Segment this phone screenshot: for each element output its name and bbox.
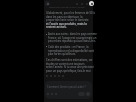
- staticText: et l'accès aux produits, mais la plupart: [46, 22, 95, 26]
- staticText: études se varient une toujours exactemen…: [46, 62, 95, 66]
- button[interactable]: Action: [57, 74, 61, 78]
- button[interactable]: Comment Gemini peut-il aider ?: [45, 81, 92, 99]
- button[interactable]: Compte: [89, 1, 94, 6]
- button[interactable]: Action: [61, 74, 65, 78]
- button[interactable]: Action: [49, 74, 53, 78]
- button[interactable]: Option: [74, 1, 79, 6]
- staticText: Ces chiffres sont des estimations, car l…: [46, 58, 95, 62]
- button[interactable]: Action: [53, 74, 57, 78]
- staticText: plus fortes qu'ailleurs.: [48, 52, 76, 56]
- staticText: proportion varie selon le contexte cultu…: [46, 18, 95, 22]
- button[interactable]: Gemini: [45, 1, 50, 6]
- staticText: restent actives.: [46, 25, 67, 29]
- staticText: Comment Gemini peut-il aider ?: [47, 85, 86, 89]
- staticText: Accès aux soins : dans les pays comme la: [48, 32, 97, 36]
- staticText: peu moins répandu qu'aux États-Unis.: [48, 39, 96, 43]
- staticText: Globalement, pour les femmes de 50 à 65 …: [46, 11, 95, 15]
- button[interactable]: Modèle: [78, 92, 85, 96]
- staticText: selon l'année. Si tu veux une précision: [46, 65, 94, 69]
- button[interactable]: Outil: [46, 92, 50, 96]
- staticText: Coût des produits : en France, la: [48, 45, 89, 49]
- staticText: Gemini peut faire des erreurs. Vérifiez.: [49, 6, 86, 9]
- button[interactable]: Envoyer: [86, 92, 90, 96]
- button[interactable]: Outil: [50, 92, 54, 96]
- button[interactable]: Option: [84, 1, 89, 6]
- button[interactable]: Outil: [54, 92, 58, 96]
- button[interactable]: Action: [45, 74, 49, 78]
- staticText: dans les pays occidentaux, la: [46, 15, 83, 19]
- staticText: France, où l'usage est courant mais un: [48, 36, 97, 40]
- staticText: pour un pays spécifique, fais-le moi sav…: [46, 69, 95, 73]
- staticText: normalisation et la disponibilité sont: [48, 49, 95, 53]
- button[interactable]: Option: [79, 1, 84, 6]
